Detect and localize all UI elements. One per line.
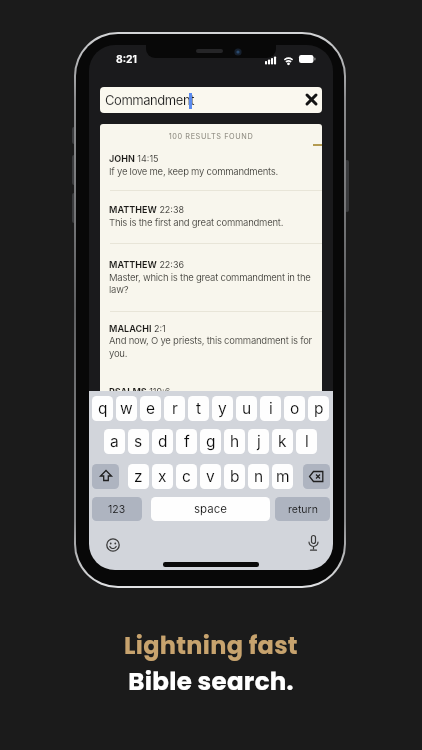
staticText: p [314,399,324,418]
staticText: g [206,432,216,451]
staticText: q [98,399,108,418]
staticText: law? [109,284,129,295]
staticText: you. [109,348,128,359]
staticText: a [110,432,119,451]
button[interactable]: l [296,429,317,454]
button[interactable] [306,94,317,105]
staticText: e [146,399,156,418]
button[interactable]: c [176,464,197,489]
button[interactable] [308,535,319,552]
staticText: k [278,432,287,451]
button[interactable]: p [308,396,329,421]
button[interactable]: s [128,429,149,454]
staticText: Bible search. [0,664,422,698]
button[interactable]: 123 [92,497,142,521]
button[interactable] [100,145,322,195]
button[interactable]: t [188,396,209,421]
staticText: PSALMS 119:6 [109,386,171,391]
staticText: 100 RESULTS FOUND [100,132,322,141]
button[interactable]: m [272,464,293,489]
button[interactable]: b [224,464,245,489]
staticText: 8:21 [116,53,138,66]
staticText: s [134,432,143,451]
button[interactable]: h [224,429,245,454]
button[interactable] [100,87,322,113]
staticText: z [134,467,143,486]
button[interactable]: o [284,396,305,421]
button[interactable] [92,464,119,489]
button[interactable] [106,538,120,552]
staticText: v [206,467,215,486]
staticText: f [184,432,190,451]
button[interactable]: f [176,429,197,454]
button[interactable]: k [272,429,293,454]
staticText: o [290,399,300,418]
button[interactable]: j [248,429,269,454]
button[interactable]: space [151,497,270,521]
button[interactable]: z [128,464,149,489]
staticText: c [182,467,191,486]
staticText: d [158,432,168,451]
button[interactable] [100,315,322,365]
button[interactable]: r [164,396,185,421]
staticText: t [196,399,202,418]
button[interactable]: i [260,396,281,421]
button[interactable] [100,251,322,301]
staticText: And now, O ye priests, this commandment … [109,335,312,346]
button[interactable]: v [200,464,221,489]
staticText: If ye love me, keep my commandments. [109,166,279,177]
staticText: This is the first and great commandment. [109,217,284,228]
staticText: space [194,502,227,516]
staticText: MALACHI 2:1 [109,323,166,334]
staticText: Commandment [105,92,194,108]
button[interactable]: w [116,396,137,421]
button[interactable]: n [248,464,269,489]
staticText: m [276,467,290,486]
button[interactable]: q [92,396,113,421]
button[interactable]: g [200,429,221,454]
button[interactable]: d [152,429,173,454]
staticText: b [230,467,240,486]
staticText: i [269,399,273,418]
button[interactable]: u [236,396,257,421]
staticText: JOHN 14:15 [109,153,159,164]
staticText: u [242,399,252,418]
button[interactable] [100,196,322,246]
staticText: Lightning fast [0,629,422,663]
button[interactable]: y [212,396,233,421]
staticText: r [172,399,178,418]
button[interactable]: e [140,396,161,421]
staticText: n [254,467,264,486]
staticText: return [288,503,318,516]
button[interactable]: return [275,497,330,521]
button[interactable] [303,464,330,489]
button[interactable]: a [104,429,125,454]
staticText: w [120,399,133,418]
staticText: Master, which is the great commandment i… [109,272,311,283]
button[interactable]: x [152,464,173,489]
staticText: x [158,467,167,486]
staticText: MATTHEW 22:38 [109,204,185,215]
staticText: 123 [108,503,126,516]
staticText: MATTHEW 22:36 [109,259,185,270]
staticText: h [230,432,240,451]
staticText: y [218,399,227,418]
staticText: j [257,432,261,451]
staticText: l [305,432,309,451]
